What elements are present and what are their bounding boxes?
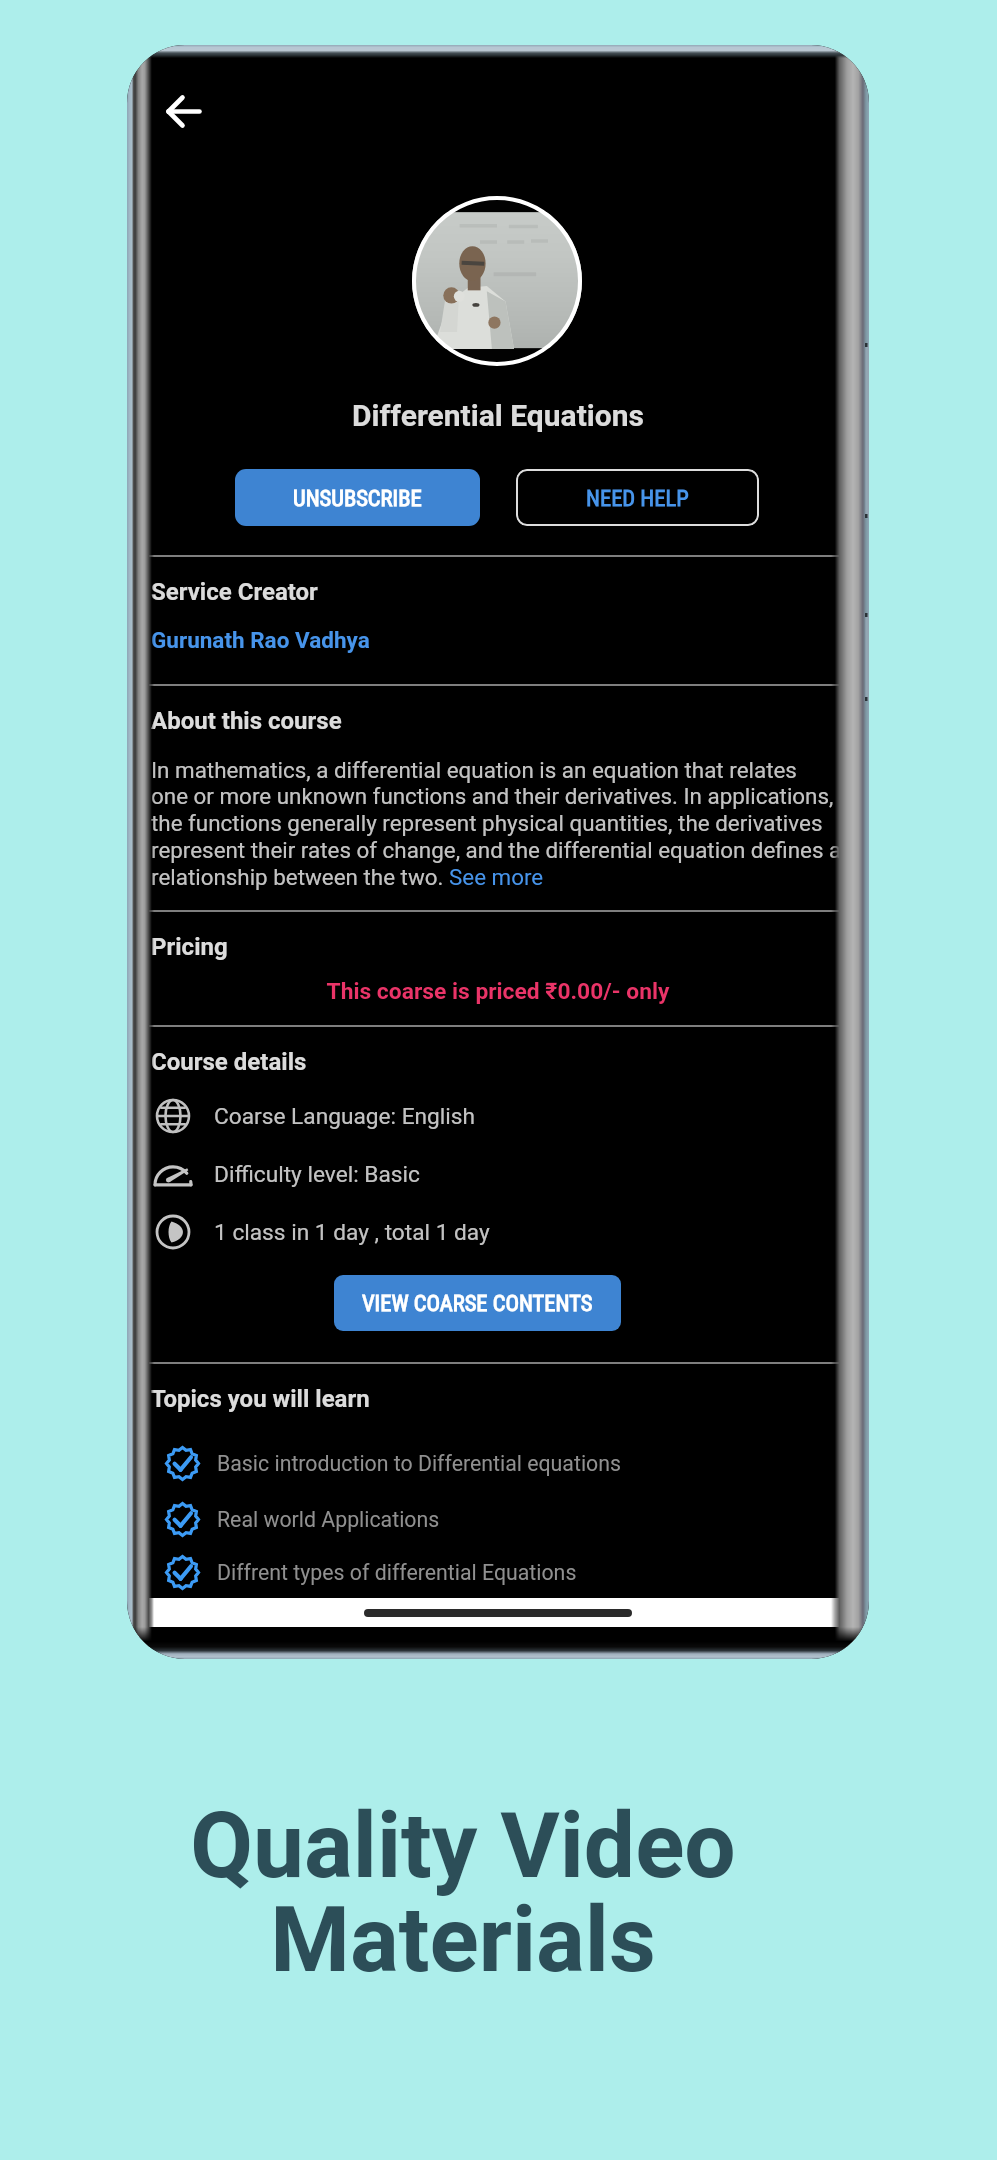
staticText: Diffrent types of differential Equations xyxy=(217,1560,577,1585)
staticText: NEED HELP xyxy=(586,485,689,511)
button[interactable]: In mathematics, a differential equation … xyxy=(151,757,863,890)
button[interactable]: Coarse Language: English xyxy=(155,1095,755,1137)
button[interactable]: UNSUBSCRIBE xyxy=(235,469,480,526)
staticText: Pricing xyxy=(151,933,228,961)
button[interactable]: Course thumbnail xyxy=(412,196,582,366)
staticText: VIEW COARSE CONTENTS xyxy=(362,1290,593,1316)
staticText: Course details xyxy=(151,1048,307,1076)
button[interactable]: Gurunath Rao Vadhya xyxy=(151,627,370,653)
staticText: About this course xyxy=(151,707,342,735)
button[interactable]: VIEW COARSE CONTENTS xyxy=(334,1275,621,1331)
button[interactable]: Diffrent types of differential Equations xyxy=(165,1555,785,1590)
staticText: This coarse is priced ₹0.00/- only xyxy=(127,978,869,1005)
button[interactable]: Basic introduction to Differential equat… xyxy=(165,1446,785,1481)
staticText: Coarse Language: English xyxy=(214,1103,476,1130)
button[interactable]: 1 class in 1 day , total 1 day xyxy=(155,1211,755,1253)
staticText: Topics you will learn xyxy=(151,1385,370,1413)
staticText: UNSUBSCRIBE xyxy=(293,485,422,511)
staticText: Difficulty level: Basic xyxy=(214,1161,420,1188)
staticText: Differential Equations xyxy=(127,398,869,433)
button[interactable]: Back xyxy=(158,85,214,141)
staticText: 1 class in 1 day , total 1 day xyxy=(214,1219,490,1246)
staticText: In mathematics, a differential equation … xyxy=(151,757,842,890)
button[interactable]: Real world Applications xyxy=(165,1502,785,1537)
button[interactable]: NEED HELP xyxy=(516,469,759,526)
staticText: Basic introduction to Differential equat… xyxy=(217,1451,621,1476)
button[interactable]: Home xyxy=(364,1609,632,1617)
staticText: Quality Video Materials xyxy=(92,1793,834,1993)
staticText: Real world Applications xyxy=(217,1507,440,1532)
staticText: Service Creator xyxy=(151,578,318,606)
button[interactable]: Difficulty level: Basic xyxy=(155,1153,755,1195)
